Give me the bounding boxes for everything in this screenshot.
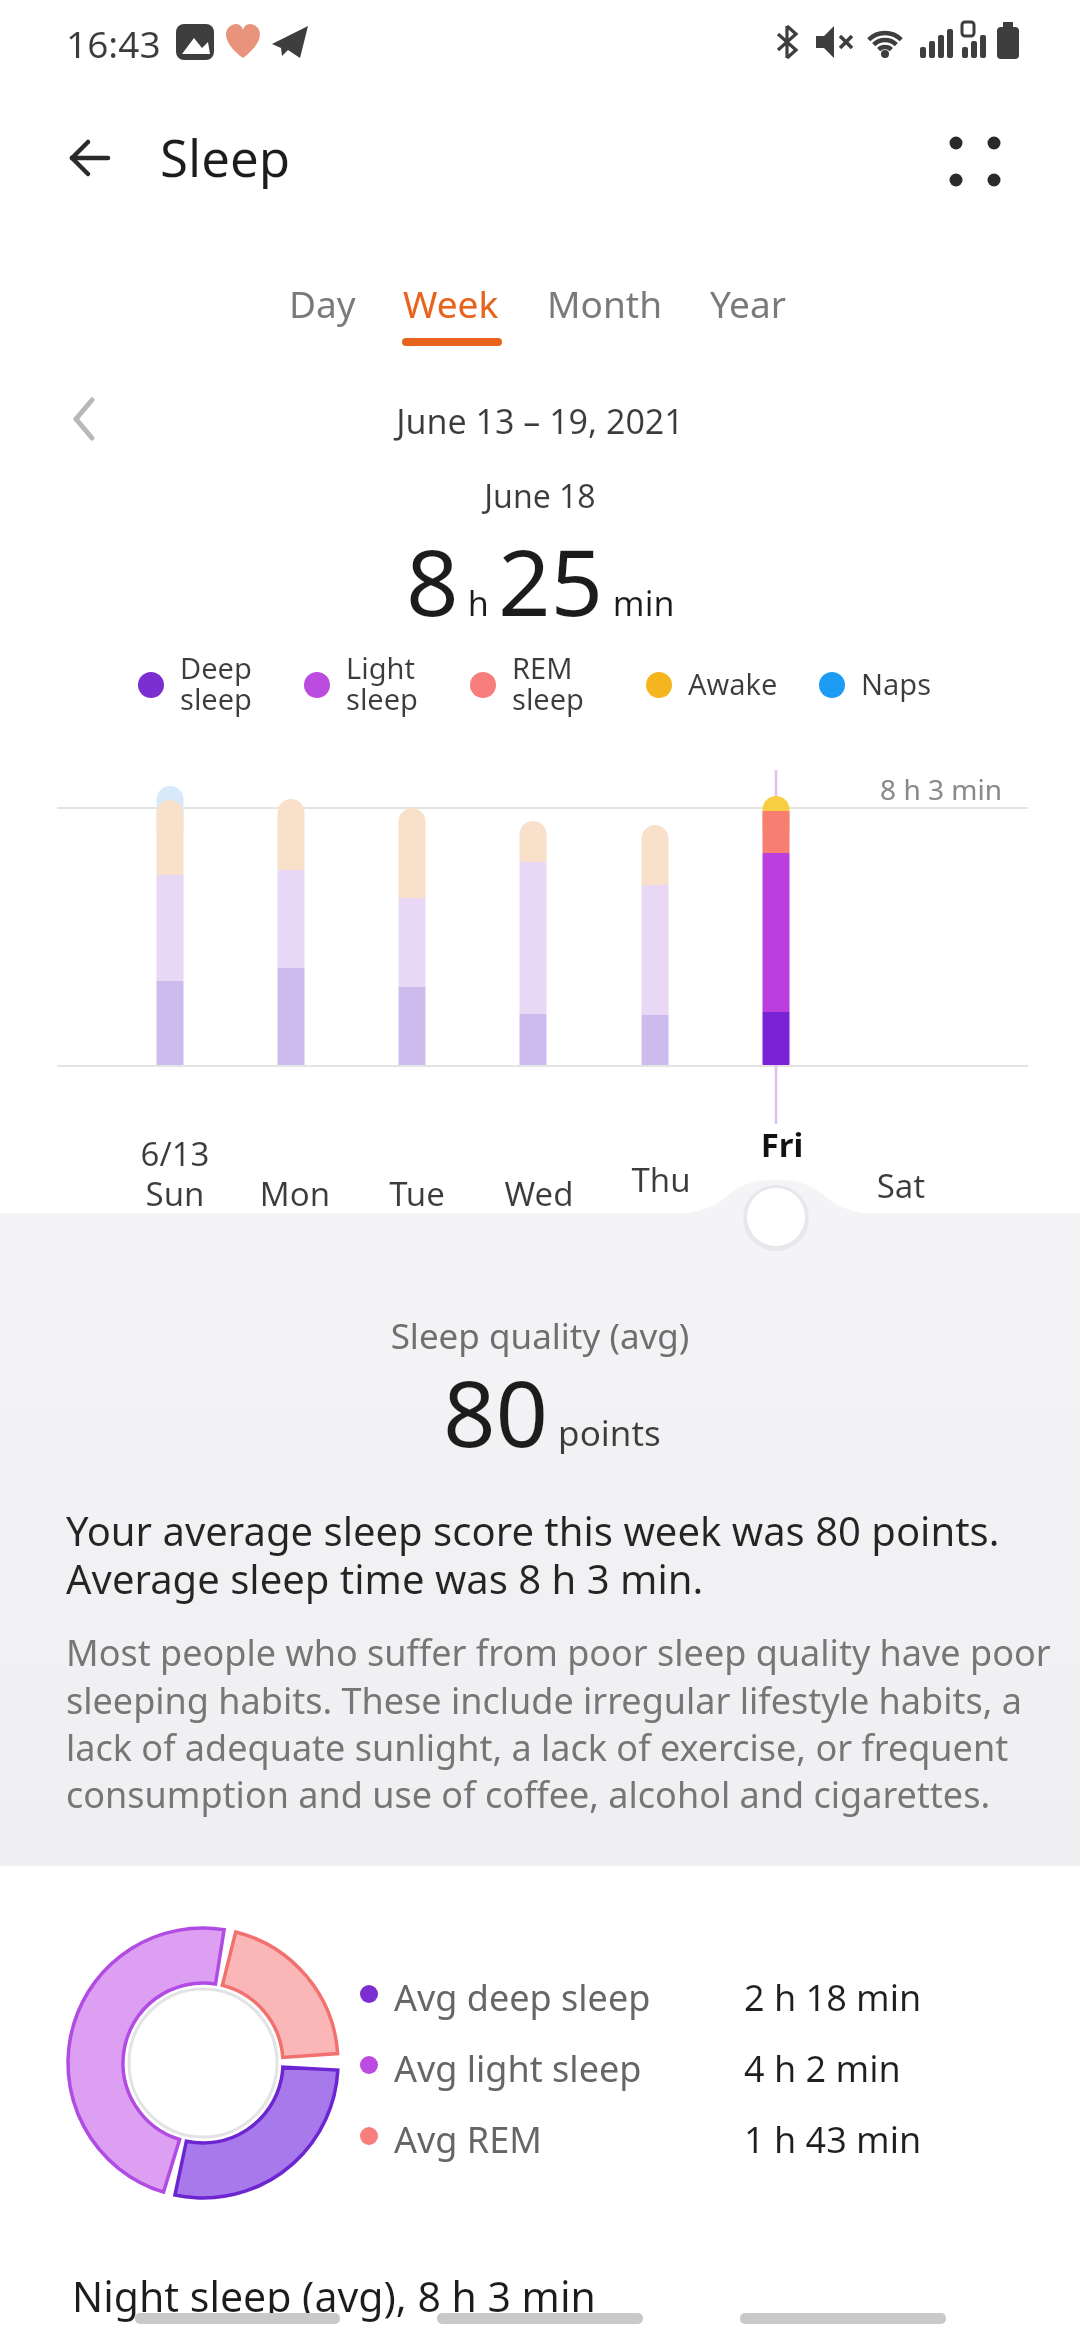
button[interactable]: Month	[505, 278, 705, 328]
staticText: 8	[406, 518, 459, 643]
staticText: Thu	[581, 1157, 741, 1202]
staticText: Tue	[337, 1171, 497, 1216]
button[interactable]: Day	[222, 278, 422, 328]
staticText: 80	[443, 1349, 549, 1474]
staticText: Sleep	[160, 122, 291, 191]
staticText: Avg light sleep	[394, 2044, 642, 2093]
button[interactable]	[928, 116, 1012, 200]
staticText: Week	[403, 278, 499, 328]
staticText: 2 h 18 min	[744, 1973, 922, 2022]
staticText: June 13 – 19, 2021	[0, 398, 1080, 444]
staticText: Night sleep (avg), 8 h 3 min	[72, 2268, 596, 2324]
staticText: 1 h 43 min	[744, 2115, 922, 2164]
staticText: 16:43	[66, 18, 161, 68]
staticText: 4 h 2 min	[744, 2044, 901, 2093]
staticText: Deep sleep	[180, 648, 252, 719]
staticText: 25	[498, 518, 604, 643]
staticText: min	[604, 580, 675, 626]
staticText: 8 h 3 min	[762, 770, 1002, 808]
staticText: Most people who suffer from poor sleep q…	[66, 1628, 1051, 1819]
staticText: Awake	[688, 664, 778, 703]
staticText: Avg deep sleep	[394, 1973, 651, 2022]
staticText: Your average sleep score this week was 8…	[66, 1503, 1000, 1605]
button[interactable]: Year	[648, 278, 848, 328]
staticText: REM sleep	[512, 648, 584, 719]
staticText: Year	[710, 278, 786, 328]
staticText: h	[459, 580, 498, 626]
button[interactable]	[58, 126, 122, 190]
staticText: Sun	[95, 1171, 255, 1216]
button[interactable]: Week	[351, 278, 551, 328]
staticText: June 18	[0, 474, 1080, 518]
staticText: points	[549, 1409, 661, 1457]
staticText: Month	[547, 278, 663, 328]
staticText: Mon	[215, 1171, 375, 1216]
staticText: Sat	[821, 1163, 981, 1208]
staticText: Day	[289, 278, 356, 328]
button[interactable]	[56, 390, 112, 446]
staticText: Avg REM	[394, 2115, 542, 2164]
staticText: 6/13	[95, 1131, 255, 1176]
staticText: Fri	[702, 1122, 862, 1167]
staticText: Light sleep	[346, 648, 418, 719]
staticText: Naps	[861, 664, 932, 703]
staticText: Wed	[459, 1171, 619, 1216]
staticText: Sleep quality (avg)	[0, 1312, 1080, 1360]
